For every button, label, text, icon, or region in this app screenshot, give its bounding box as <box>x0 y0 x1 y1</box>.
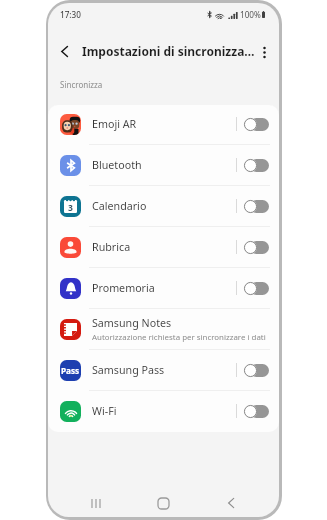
button[interactable]: Toggle <box>244 159 268 172</box>
button[interactable]: Toggle <box>244 200 268 213</box>
button[interactable]: Toggle <box>244 405 268 418</box>
staticText: Wi-Fi <box>92 404 117 419</box>
button[interactable]: Rubrica <box>48 227 279 267</box>
button[interactable]: Toggle <box>244 241 268 254</box>
button[interactable]: Recents <box>84 491 108 515</box>
staticText: Autorizzazione richiesta per sincronizza… <box>92 332 266 343</box>
staticText: Pass <box>61 365 80 376</box>
button[interactable]: Home <box>151 491 175 515</box>
staticText: Samsung Notes <box>92 316 172 331</box>
staticText: 100% <box>240 9 261 20</box>
staticText: 3 <box>68 202 73 214</box>
button[interactable]: Toggle <box>244 282 268 295</box>
staticText: 17:30 <box>60 9 81 20</box>
staticText: Samsung Pass <box>92 363 165 378</box>
button[interactable]: 3 <box>48 186 279 226</box>
staticText: Promemoria <box>92 281 155 296</box>
button[interactable]: Toggle <box>244 118 268 131</box>
staticText: Impostazioni di sincronizza… <box>82 43 255 59</box>
staticText: Emoji AR <box>92 117 137 132</box>
button[interactable]: Back <box>219 491 243 515</box>
button[interactable]: Pass <box>48 350 279 390</box>
button[interactable]: Samsung Notes <box>48 309 279 349</box>
button[interactable]: Back <box>51 38 77 64</box>
button[interactable]: More options <box>252 40 276 64</box>
button[interactable]: Toggle <box>244 364 268 377</box>
button[interactable]: Bluetooth <box>48 145 279 185</box>
staticText: Rubrica <box>92 240 131 255</box>
staticText: Sincronizza <box>60 79 103 90</box>
button[interactable]: Emoji AR <box>48 104 279 144</box>
button[interactable]: Wi-Fi <box>48 391 279 431</box>
staticText: Calendario <box>92 199 147 214</box>
button[interactable]: Promemoria <box>48 268 279 308</box>
staticText: Bluetooth <box>92 158 142 173</box>
